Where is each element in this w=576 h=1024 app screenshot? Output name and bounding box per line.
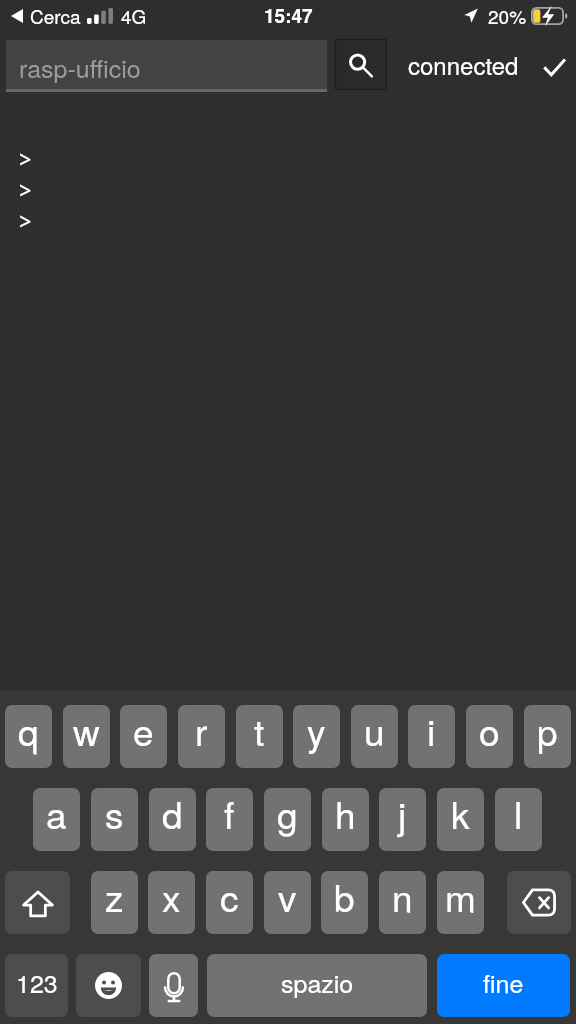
- staticText: w: [73, 705, 100, 757]
- staticText: q: [18, 705, 39, 757]
- staticText: x: [162, 871, 181, 923]
- staticText: 4G: [121, 2, 147, 29]
- button[interactable]: j: [379, 788, 426, 851]
- staticText: p: [537, 705, 558, 757]
- staticText: b: [334, 871, 355, 923]
- staticText: 123: [16, 964, 58, 1000]
- button[interactable]: p: [524, 705, 571, 768]
- button[interactable]: d: [149, 788, 196, 851]
- button[interactable]: fine: [437, 954, 570, 1017]
- button[interactable]: Backspace: [507, 871, 571, 934]
- staticText: rasp-ufficio: [19, 49, 141, 85]
- button[interactable]: h: [322, 788, 369, 851]
- staticText: Cerca: [30, 2, 81, 29]
- button[interactable]: x: [148, 871, 195, 934]
- staticText: 20%: [488, 2, 527, 29]
- button[interactable]: connected: [398, 40, 570, 90]
- staticText: z: [105, 871, 124, 923]
- button[interactable]: rasp-ufficio: [6, 40, 327, 92]
- button[interactable]: Dictate: [149, 954, 198, 1017]
- button[interactable]: s: [91, 788, 138, 851]
- staticText: u: [364, 705, 385, 757]
- staticText: s: [105, 788, 124, 840]
- button[interactable]: m: [437, 871, 484, 934]
- staticText: i: [427, 705, 436, 757]
- staticText: g: [277, 788, 298, 840]
- button[interactable]: Emoji: [76, 954, 141, 1017]
- staticText: d: [162, 788, 183, 840]
- button[interactable]: b: [321, 871, 368, 934]
- button[interactable]: f: [206, 788, 253, 851]
- staticText: >: [18, 204, 33, 235]
- button[interactable]: a: [33, 788, 80, 851]
- button[interactable]: v: [264, 871, 311, 934]
- button[interactable]: spazio: [207, 954, 427, 1017]
- staticText: m: [445, 871, 476, 923]
- staticText: l: [514, 788, 523, 840]
- staticText: f: [224, 788, 235, 840]
- button[interactable]: y: [293, 705, 340, 768]
- button[interactable]: i: [408, 705, 455, 768]
- staticText: t: [254, 705, 265, 757]
- button[interactable]: e: [120, 705, 167, 768]
- staticText: r: [195, 705, 208, 757]
- staticText: j: [398, 788, 407, 840]
- staticText: k: [451, 788, 470, 840]
- button[interactable]: k: [437, 788, 484, 851]
- staticText: v: [278, 871, 297, 923]
- button[interactable]: o: [466, 705, 513, 768]
- button[interactable]: Numbers: [5, 954, 68, 1017]
- staticText: h: [335, 788, 356, 840]
- button[interactable]: u: [351, 705, 398, 768]
- button[interactable]: g: [264, 788, 311, 851]
- staticText: a: [46, 788, 67, 840]
- button[interactable]: z: [91, 871, 138, 934]
- button[interactable]: w: [63, 705, 110, 768]
- button[interactable]: Shift: [5, 871, 70, 934]
- staticText: n: [392, 871, 413, 923]
- staticText: >: [18, 173, 33, 204]
- staticText: e: [133, 705, 154, 757]
- staticText: connected: [408, 47, 519, 81]
- button[interactable]: n: [379, 871, 426, 934]
- staticText: o: [479, 705, 500, 757]
- staticText: >: [18, 142, 33, 173]
- button[interactable]: r: [178, 705, 225, 768]
- button[interactable]: c: [206, 871, 253, 934]
- staticText: 15:47: [264, 2, 313, 29]
- button[interactable]: Search: [335, 39, 387, 90]
- staticText: c: [220, 871, 239, 923]
- button[interactable]: l: [495, 788, 542, 851]
- staticText: fine: [483, 964, 524, 1000]
- staticText: y: [307, 705, 326, 757]
- button[interactable]: t: [236, 705, 283, 768]
- staticText: spazio: [281, 964, 354, 1000]
- button[interactable]: q: [5, 705, 52, 768]
